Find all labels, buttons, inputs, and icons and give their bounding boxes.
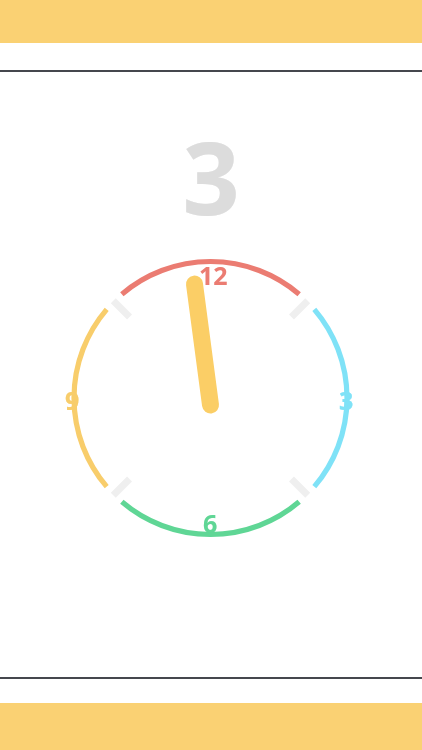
button[interactable]: Clock face showing 12 o'clock — [50, 238, 370, 558]
staticText: 6 — [203, 506, 218, 540]
staticText: 3 — [182, 108, 240, 218]
staticText: 3 — [339, 383, 354, 417]
button[interactable]: 3 — [0, 108, 422, 218]
staticText: 9 — [65, 383, 80, 417]
staticText: 12 — [199, 258, 228, 292]
